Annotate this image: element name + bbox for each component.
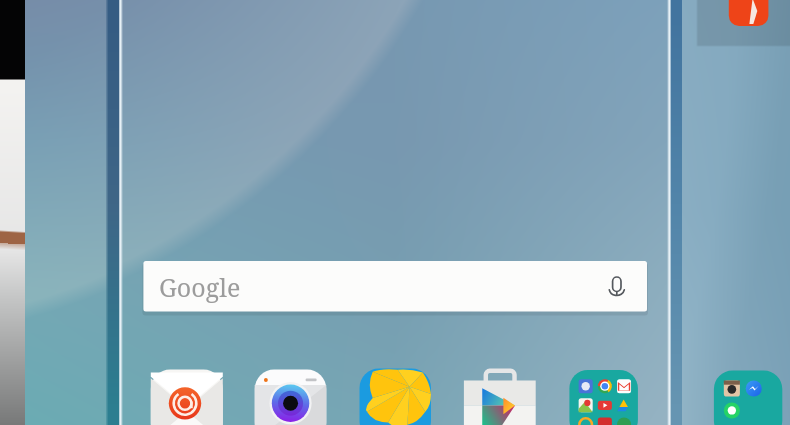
- button[interactable]: Play Store: [463, 369, 535, 425]
- button[interactable]: Gallery: [359, 369, 431, 425]
- button[interactable]: Email: [150, 369, 222, 425]
- button[interactable]: Camera: [254, 369, 326, 425]
- button[interactable]: Voice search: [601, 265, 645, 309]
- button[interactable]: Social folder: [713, 370, 782, 425]
- button[interactable]: Google folder: [569, 369, 641, 425]
- button[interactable]: Google search: [143, 261, 647, 312]
- staticText: Google: [159, 270, 241, 304]
